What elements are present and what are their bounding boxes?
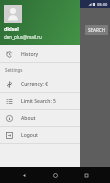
button[interactable]: Limit Search: 5 xyxy=(0,93,80,109)
staticText: Settings xyxy=(5,67,23,73)
button[interactable]: Recent apps xyxy=(79,168,93,182)
button[interactable]: History xyxy=(0,46,80,62)
button[interactable]: SEARCH xyxy=(85,25,108,35)
button[interactable]: About xyxy=(0,110,80,126)
staticText: Logout xyxy=(21,132,38,139)
staticText: 08:00 xyxy=(97,2,108,7)
staticText: History xyxy=(21,51,39,58)
staticText: Currency: € xyxy=(21,81,49,88)
button[interactable]: Currency: € xyxy=(0,76,80,92)
staticText: dkisel xyxy=(4,26,19,33)
staticText: About xyxy=(21,115,36,122)
staticText: SEARCH xyxy=(88,27,105,33)
staticText: den_plus@mail.ru xyxy=(4,34,42,40)
button[interactable]: Logout xyxy=(0,127,80,143)
button[interactable]: Home xyxy=(48,168,62,182)
button[interactable]: Back xyxy=(17,168,31,182)
staticText: Limit Search: 5 xyxy=(21,98,56,105)
